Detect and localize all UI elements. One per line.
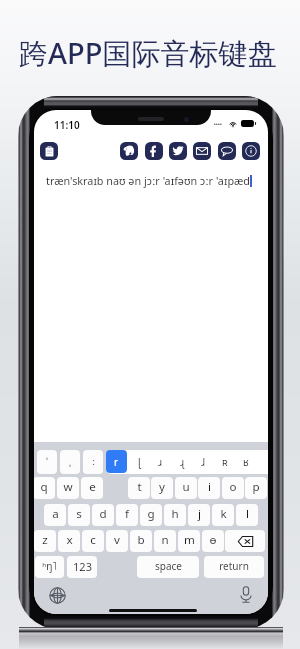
staticText: k	[220, 506, 227, 522]
staticText: n	[161, 532, 169, 548]
staticText: h	[171, 506, 179, 522]
staticText: w	[63, 479, 73, 495]
button[interactable]: ʁ	[236, 450, 256, 474]
staticText: ɺ	[201, 455, 206, 469]
button[interactable]: a	[44, 504, 66, 526]
staticText: i	[208, 479, 211, 495]
button[interactable]: h	[164, 504, 186, 526]
staticText: s	[76, 506, 82, 522]
button[interactable]	[106, 450, 268, 474]
staticText: p	[252, 479, 260, 495]
button[interactable]: Twitter	[169, 142, 187, 160]
staticText: m	[184, 532, 195, 548]
button[interactable]: x	[58, 530, 80, 552]
staticText: q	[40, 479, 48, 495]
button[interactable]: l	[236, 504, 258, 526]
button[interactable]: ʰŋ˥	[35, 556, 64, 578]
button[interactable]: Backspace	[225, 530, 265, 552]
button[interactable]: o	[222, 477, 244, 499]
button[interactable]: q	[34, 477, 55, 499]
button[interactable]: ˌ	[60, 450, 80, 474]
staticText: 跨APP国际音标键盘	[19, 33, 277, 73]
staticText: j	[198, 506, 201, 522]
staticText: l	[246, 506, 249, 522]
staticText: e	[89, 479, 96, 495]
staticText: ʰŋ˥	[42, 559, 57, 573]
button[interactable]: Email	[193, 142, 211, 160]
button[interactable]: ɺ	[193, 450, 213, 474]
button[interactable]: n	[154, 530, 176, 552]
staticText: y	[159, 479, 165, 495]
button[interactable]: b	[130, 530, 152, 552]
button[interactable]: Clipboard	[40, 142, 58, 160]
staticText: 123	[73, 559, 92, 574]
button[interactable]: d	[92, 504, 114, 526]
button[interactable]: 123	[67, 556, 97, 578]
button[interactable]: ʀ	[215, 450, 235, 474]
button[interactable]: j	[188, 504, 210, 526]
button[interactable]: k	[212, 504, 234, 526]
button[interactable]: s	[68, 504, 90, 526]
staticText: f	[125, 506, 129, 522]
staticText: ɵ	[209, 532, 217, 548]
staticText: træn'skraɪb naʊ ən jɔːr 'aɪfəʊn ɔːr 'aɪp…	[46, 173, 250, 188]
staticText: d	[99, 506, 107, 522]
staticText: ɹ	[158, 455, 163, 469]
button[interactable]: ɹ	[150, 450, 170, 474]
staticText: t	[137, 479, 142, 495]
staticText: ɻ	[180, 455, 185, 469]
button[interactable]: ɭ	[129, 450, 149, 474]
button[interactable]: i	[198, 477, 220, 499]
button[interactable]: ɻ	[172, 450, 192, 474]
staticText: r	[114, 455, 119, 469]
button[interactable]: Info	[242, 142, 260, 160]
button[interactable]: p	[245, 477, 267, 499]
button[interactable]: Message	[218, 142, 236, 160]
button[interactable]: return	[204, 556, 264, 578]
button[interactable]: v	[106, 530, 128, 552]
button[interactable]: f	[116, 504, 138, 526]
button[interactable]: g	[140, 504, 162, 526]
staticText: ʀ	[222, 455, 228, 469]
button[interactable]: ˈ	[37, 450, 57, 474]
button[interactable]: y	[151, 477, 173, 499]
button[interactable]: z	[34, 530, 56, 552]
button[interactable]: w	[57, 477, 79, 499]
staticText: x	[66, 532, 73, 548]
button[interactable]: ɵ	[202, 530, 224, 552]
staticText: a	[52, 506, 59, 522]
button[interactable]: u	[175, 477, 197, 499]
button[interactable]: space	[137, 556, 199, 578]
staticText: c	[90, 532, 96, 548]
staticText: 11:10	[54, 118, 80, 132]
button[interactable]: c	[82, 530, 104, 552]
staticText: space	[155, 559, 182, 573]
staticText: ː	[92, 455, 95, 467]
button[interactable]: m	[178, 530, 200, 552]
staticText: b	[137, 532, 145, 548]
button[interactable]: ː	[83, 450, 103, 474]
staticText: ˈ	[46, 455, 48, 467]
staticText: return	[219, 559, 249, 573]
button[interactable]: r	[106, 450, 127, 473]
button[interactable]: Evernote	[120, 142, 138, 160]
button[interactable]: Dictation	[240, 586, 252, 603]
button[interactable]: Switch keyboard	[49, 587, 66, 604]
button[interactable]: t	[128, 477, 150, 499]
staticText: ʁ	[243, 455, 249, 469]
staticText: ˌ	[69, 455, 71, 467]
staticText: u	[182, 479, 190, 495]
staticText: g	[147, 506, 155, 522]
staticText: o	[229, 479, 237, 495]
button[interactable]: e	[81, 477, 103, 499]
staticText: ɭ	[138, 455, 141, 469]
staticText: z	[42, 532, 48, 548]
button[interactable]: Facebook	[145, 142, 163, 160]
staticText: v	[114, 532, 120, 548]
